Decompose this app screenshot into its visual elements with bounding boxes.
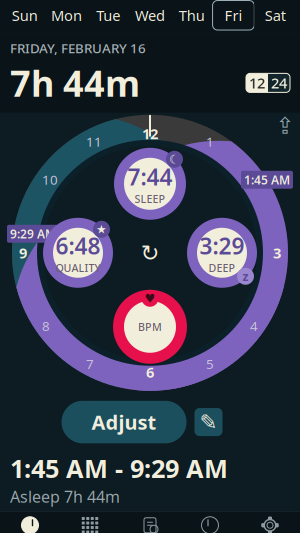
button[interactable]: Mon xyxy=(46,0,87,30)
staticText: FRIDAY, FEBRUARY 16 xyxy=(10,39,146,57)
button[interactable]: Thu xyxy=(171,0,213,30)
button[interactable]: Wed xyxy=(129,0,171,30)
button[interactable]: Day/Edit xyxy=(120,511,180,533)
staticText: 1 xyxy=(206,133,214,150)
staticText: Mon xyxy=(51,5,82,25)
staticText: ✎ xyxy=(199,410,217,434)
staticText: 3 xyxy=(273,243,281,262)
staticText: z xyxy=(242,268,248,284)
button[interactable]: Tue xyxy=(87,0,129,30)
staticText: 12 xyxy=(142,124,158,143)
staticText: ↻ xyxy=(140,240,159,266)
staticText: 6:48 xyxy=(55,231,100,261)
button[interactable]: Settings xyxy=(240,511,300,533)
staticText: 7 xyxy=(86,355,94,373)
staticText: ★ xyxy=(96,222,107,236)
staticText: ☾ xyxy=(169,152,180,166)
staticText: 9:29 AM xyxy=(10,226,56,242)
button[interactable]: History xyxy=(60,511,120,533)
staticText: Fri xyxy=(224,5,242,25)
staticText: BPM xyxy=(138,320,162,334)
staticText: 12 xyxy=(249,73,265,93)
button[interactable]: 6:48 xyxy=(41,216,115,290)
staticText: 7h 44m xyxy=(10,59,140,107)
staticText: Tue xyxy=(96,5,120,25)
staticText: DEEP xyxy=(208,261,235,275)
staticText: 2 xyxy=(250,171,258,188)
button[interactable]: Sun xyxy=(4,0,46,30)
button[interactable]: Clock xyxy=(0,511,60,533)
button[interactable]: Tweak xyxy=(180,511,240,533)
staticText: ♥ xyxy=(144,291,155,305)
staticText: 8 xyxy=(42,317,50,335)
staticText: 11 xyxy=(86,133,102,150)
staticText: 9 xyxy=(19,243,27,262)
staticText: 5 xyxy=(206,355,214,373)
button[interactable]: Fri xyxy=(213,0,254,30)
staticText: Asleep 7h 44m xyxy=(10,486,120,507)
staticText: SLEEP xyxy=(134,192,165,206)
staticText: 1:45 AM - 9:29 AM xyxy=(10,451,228,485)
staticText: Sun xyxy=(12,5,38,25)
button[interactable]: Edit xyxy=(194,408,222,436)
button[interactable]: BPM xyxy=(111,288,189,366)
staticText: Adjust xyxy=(91,409,156,435)
staticText: 7:44 xyxy=(127,162,172,192)
button[interactable]: 3:29 xyxy=(185,216,259,290)
button[interactable]: Share xyxy=(272,113,298,139)
staticText: Thu xyxy=(179,5,205,25)
button[interactable]: Adjust xyxy=(61,401,186,443)
staticText: 4 xyxy=(250,317,258,335)
staticText: 3:29 xyxy=(199,231,244,261)
staticText: Sat xyxy=(265,5,286,25)
staticText: 24 xyxy=(271,73,287,93)
button[interactable]: 7:44 xyxy=(112,146,188,222)
button[interactable]: 12 xyxy=(246,73,268,92)
staticText: 1:45 AM xyxy=(244,172,290,188)
staticText: 6 xyxy=(146,362,154,382)
staticText: Wed xyxy=(135,5,165,25)
button[interactable]: Sat xyxy=(254,0,296,30)
staticText: 10 xyxy=(42,171,58,188)
staticText: ⇪ xyxy=(275,113,294,139)
staticText: QUALITY xyxy=(55,261,100,275)
button[interactable]: 24 xyxy=(268,73,290,92)
